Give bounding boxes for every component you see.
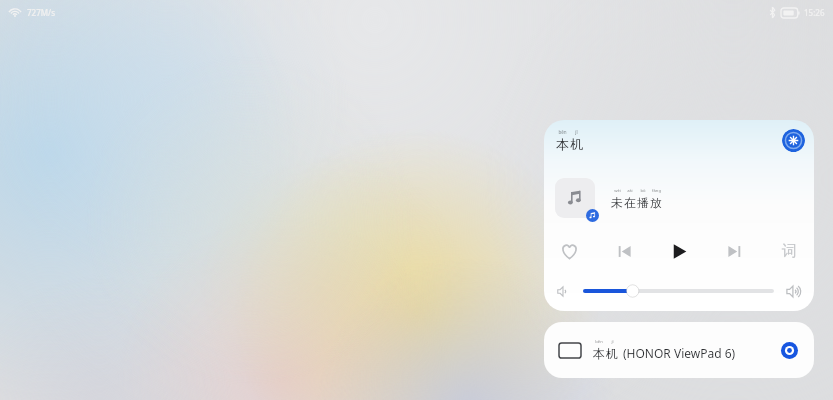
staticText: 在 bbox=[624, 195, 636, 210]
staticText: běn bbox=[595, 339, 603, 345]
button[interactable]: Previous bbox=[611, 238, 637, 264]
staticText: 本 bbox=[593, 346, 605, 361]
staticText: 本 bbox=[556, 136, 569, 152]
button[interactable]: Play bbox=[666, 238, 692, 264]
button[interactable]: Favorite bbox=[556, 238, 582, 264]
button[interactable]: Album art bbox=[555, 178, 595, 218]
staticText: 播 bbox=[637, 195, 649, 210]
staticText: jī bbox=[575, 129, 578, 135]
staticText: 机 bbox=[570, 136, 583, 152]
button[interactable]: Cast to device bbox=[782, 129, 805, 152]
button[interactable]: Volume bbox=[583, 282, 774, 300]
staticText: zài bbox=[627, 188, 633, 194]
staticText: 词 bbox=[782, 242, 797, 261]
staticText: 放 bbox=[650, 195, 662, 210]
staticText: 15:26 bbox=[804, 7, 825, 18]
staticText: fàng bbox=[652, 188, 661, 194]
staticText: běn bbox=[558, 129, 567, 135]
staticText: (HONOR ViewPad 6) bbox=[623, 345, 736, 361]
staticText: 机 bbox=[606, 346, 618, 361]
staticText: 未 bbox=[611, 195, 623, 210]
button[interactable]: Selected device bbox=[778, 339, 800, 361]
staticText: 727M/s bbox=[27, 7, 56, 18]
button[interactable]: 词 bbox=[776, 238, 802, 264]
staticText: wèi bbox=[614, 188, 621, 194]
staticText: jī bbox=[611, 339, 614, 345]
button[interactable]: Next bbox=[721, 238, 747, 264]
staticText: bō bbox=[640, 188, 646, 194]
button[interactable]: běn bbox=[544, 322, 814, 378]
